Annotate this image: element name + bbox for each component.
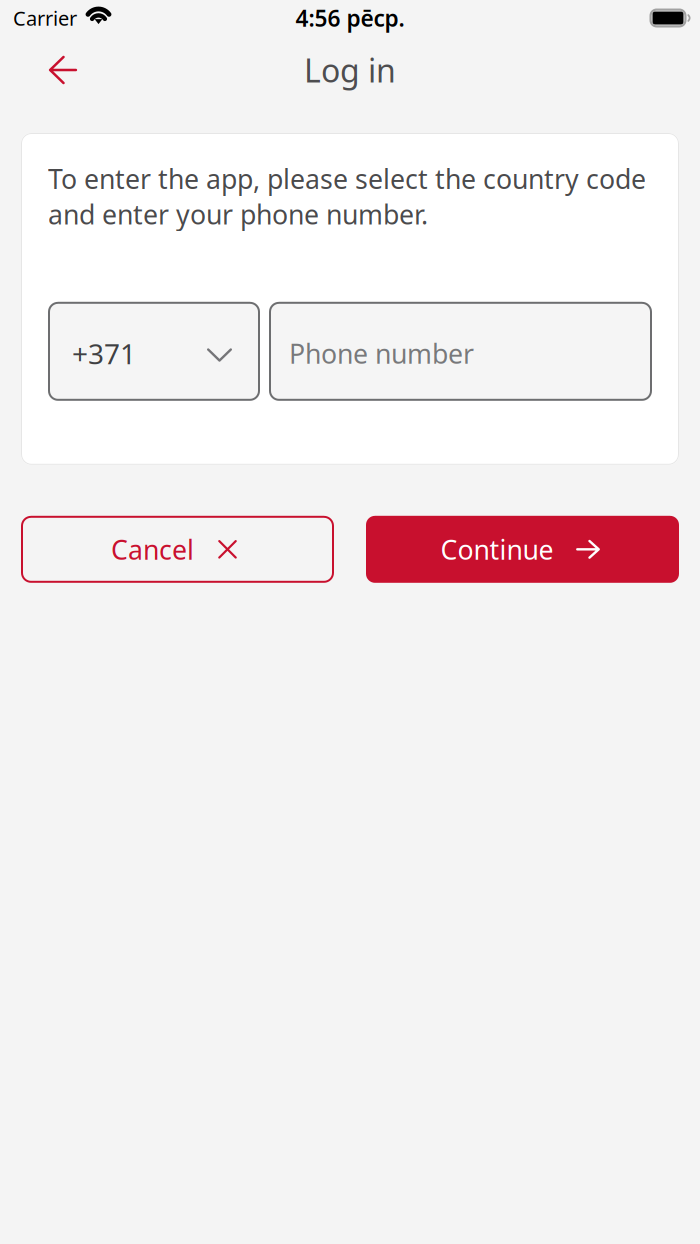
staticText: Carrier (13, 5, 77, 31)
staticText: To enter the app, please select the coun… (48, 161, 646, 232)
button[interactable]: Continue (366, 516, 679, 583)
button[interactable]: Back (25, 40, 101, 100)
staticText: +371 (72, 335, 136, 372)
staticText: Continue (440, 532, 553, 567)
button[interactable]: Country code +371 (48, 302, 260, 401)
staticText: 4:56 pēcp. (295, 3, 404, 33)
staticText: Phone number (289, 336, 474, 371)
staticText: Log in (304, 49, 396, 91)
button[interactable]: Phone number (269, 302, 652, 401)
button[interactable]: Cancel (21, 516, 334, 583)
staticText: Cancel (111, 532, 194, 567)
